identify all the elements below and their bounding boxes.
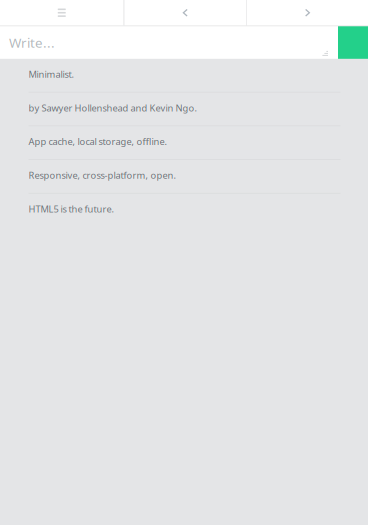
button[interactable]: App cache, local storage, offline. <box>28 126 340 160</box>
staticText: Minimalist. <box>28 68 74 80</box>
button[interactable]: Responsive, cross-platform, open. <box>28 160 340 194</box>
staticText: Write... <box>9 34 55 51</box>
staticText: by Sawyer Hollenshead and Kevin Ngo. <box>28 102 197 114</box>
staticText: Responsive, cross-platform, open. <box>28 169 176 181</box>
staticText: HTML5 is the future. <box>28 203 114 215</box>
button[interactable]: Post <box>338 26 368 59</box>
button[interactable]: Menu <box>0 0 123 25</box>
button[interactable]: Next <box>247 0 368 25</box>
button[interactable]: Previous <box>124 0 246 25</box>
button[interactable]: HTML5 is the future. <box>28 194 340 227</box>
staticText: App cache, local storage, offline. <box>28 135 167 148</box>
button[interactable]: Minimalist. <box>28 59 340 92</box>
button[interactable]: by Sawyer Hollenshead and Kevin Ngo. <box>28 92 340 126</box>
